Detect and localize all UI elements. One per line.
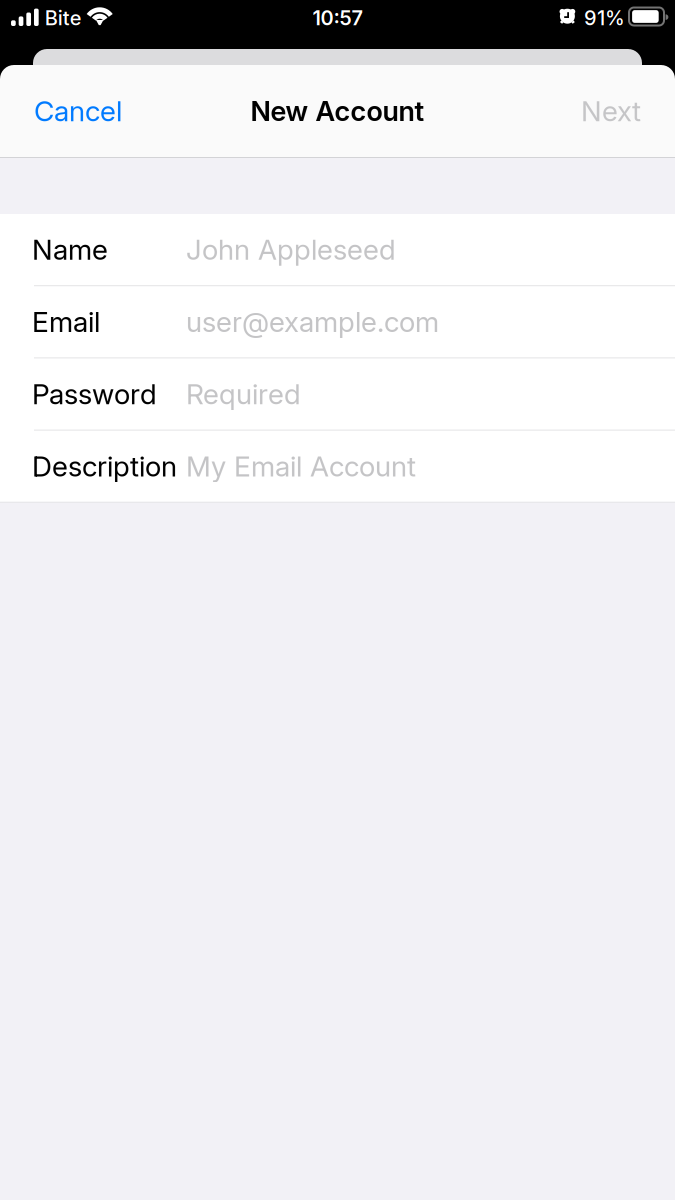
staticText: Name (32, 233, 108, 267)
staticText: Required (186, 377, 301, 411)
staticText: Bite (45, 6, 82, 30)
staticText: My Email Account (186, 449, 416, 483)
button[interactable]: Cancel (34, 94, 122, 128)
staticText: 10:57 (312, 6, 362, 30)
button[interactable]: Password (0, 358, 675, 431)
staticText: Email (32, 305, 100, 339)
staticText: user@example.com (186, 305, 439, 339)
button[interactable]: Next (581, 94, 641, 128)
button[interactable]: Description (0, 431, 675, 502)
button[interactable]: Name (0, 214, 675, 286)
button[interactable]: Email (0, 286, 675, 358)
staticText: Cancel (34, 94, 122, 128)
staticText: Next (581, 94, 641, 128)
staticText: Password (32, 377, 157, 411)
staticText: Description (32, 449, 177, 483)
staticText: John Appleseed (186, 233, 396, 267)
staticText: New Account (250, 94, 424, 128)
staticText: 91% (584, 6, 625, 30)
